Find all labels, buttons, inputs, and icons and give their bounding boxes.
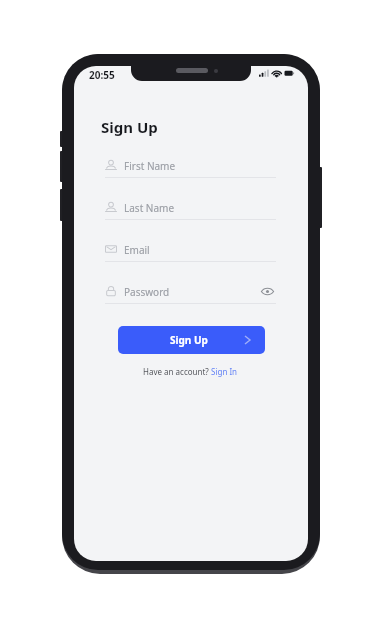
staticText: Have an account? — [143, 366, 211, 377]
staticText: Sign Up — [170, 333, 208, 347]
staticText: Last Name — [124, 201, 175, 215]
staticText: Sign Up — [101, 117, 158, 137]
staticText: Email — [124, 243, 150, 257]
staticText: First Name — [124, 159, 176, 173]
staticText: 20:55 — [89, 68, 115, 82]
staticText: Sign In — [211, 366, 238, 377]
button[interactable]: Show password — [259, 285, 276, 301]
button[interactable]: Sign Up — [118, 326, 265, 354]
staticText: Password — [124, 285, 170, 299]
button[interactable]: Sign In — [211, 366, 238, 377]
